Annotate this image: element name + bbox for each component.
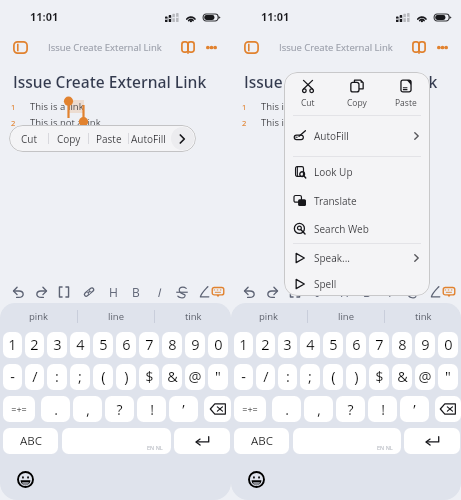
- button[interactable]: 6: [346, 332, 366, 358]
- button[interactable]: -: [3, 364, 22, 390]
- button[interactable]: ;: [70, 364, 90, 390]
- button[interactable]: ): [346, 364, 366, 390]
- button[interactable]: More actions: [168, 125, 196, 152]
- button[interactable]: 7: [139, 332, 159, 358]
- button[interactable]: -: [234, 364, 253, 390]
- button[interactable]: =+=: [3, 396, 35, 422]
- button[interactable]: Cut: [284, 72, 332, 115]
- button[interactable]: 1: [3, 332, 22, 358]
- button[interactable]: line: [308, 303, 384, 329]
- button[interactable]: @: [185, 364, 205, 390]
- button[interactable]: Enter: [404, 428, 460, 454]
- button[interactable]: AutoFill: [129, 125, 168, 152]
- button[interactable]: line: [78, 303, 154, 329]
- button[interactable]: Speak...: [284, 244, 430, 271]
- button[interactable]: Italic: [148, 281, 170, 303]
- button[interactable]: Enter: [174, 428, 230, 454]
- button[interactable]: =+=: [234, 396, 266, 422]
- button[interactable]: Toggle sidebar: [237, 34, 265, 60]
- button[interactable]: Backspace: [204, 396, 231, 422]
- button[interactable]: Translate: [284, 186, 430, 215]
- button[interactable]: ": [208, 364, 228, 390]
- button[interactable]: Hide keyboard: [207, 281, 229, 303]
- button[interactable]: ABC: [234, 428, 289, 454]
- button[interactable]: ): [116, 364, 136, 390]
- button[interactable]: 5: [323, 332, 343, 358]
- button[interactable]: 0: [208, 332, 228, 358]
- button[interactable]: Reading mode: [176, 35, 200, 59]
- button[interactable]: Bold: [125, 281, 147, 303]
- button[interactable]: ’: [169, 396, 198, 422]
- button[interactable]: ,: [73, 396, 102, 422]
- button[interactable]: Heading: [333, 281, 355, 303]
- button[interactable]: 0: [438, 332, 458, 358]
- button[interactable]: Insert link: [309, 281, 331, 303]
- button[interactable]: ?: [336, 396, 365, 422]
- button[interactable]: Cut: [9, 125, 48, 152]
- button[interactable]: (: [323, 364, 343, 390]
- button[interactable]: Highlight: [193, 281, 215, 303]
- button[interactable]: Highlight: [424, 281, 446, 303]
- button[interactable]: Look Up: [284, 157, 430, 186]
- button[interactable]: Paste: [89, 125, 128, 152]
- button[interactable]: 1: [234, 332, 253, 358]
- button[interactable]: @: [415, 364, 435, 390]
- button[interactable]: tink: [155, 303, 231, 329]
- button[interactable]: Heading: [102, 281, 124, 303]
- button[interactable]: 8: [162, 332, 182, 358]
- button[interactable]: More options: [430, 35, 454, 59]
- button[interactable]: 5: [93, 332, 113, 358]
- button[interactable]: 9: [415, 332, 435, 358]
- button[interactable]: 4: [70, 332, 90, 358]
- button[interactable]: Bold: [356, 281, 378, 303]
- button[interactable]: Backspace: [435, 396, 461, 422]
- button[interactable]: .: [41, 396, 70, 422]
- button[interactable]: Copy: [49, 125, 88, 152]
- button[interactable]: !: [137, 396, 166, 422]
- button[interactable]: Toggle sidebar: [6, 34, 34, 60]
- button[interactable]: ?: [105, 396, 134, 422]
- button[interactable]: Paste: [381, 72, 430, 115]
- button[interactable]: 9: [185, 332, 205, 358]
- button[interactable]: 4: [300, 332, 320, 358]
- button[interactable]: Italic: [379, 281, 401, 303]
- button[interactable]: pink: [0, 303, 77, 329]
- button[interactable]: (: [93, 364, 113, 390]
- button[interactable]: &: [162, 364, 182, 390]
- button[interactable]: $: [139, 364, 159, 390]
- button[interactable]: $: [369, 364, 389, 390]
- button[interactable]: Spell: [284, 271, 430, 296]
- button[interactable]: Search Web: [284, 215, 430, 243]
- button[interactable]: 2: [25, 332, 44, 358]
- button[interactable]: Insert link: [78, 281, 100, 303]
- button[interactable]: /: [256, 364, 275, 390]
- button[interactable]: 3: [47, 332, 67, 358]
- button[interactable]: Code block: [284, 281, 306, 303]
- button[interactable]: More options: [199, 35, 223, 59]
- button[interactable]: pink: [231, 303, 307, 329]
- button[interactable]: &: [392, 364, 412, 390]
- button[interactable]: !: [368, 396, 397, 422]
- button[interactable]: Emoji keyboard: [244, 467, 268, 491]
- button[interactable]: 3: [278, 332, 297, 358]
- button[interactable]: ABC: [3, 428, 58, 454]
- button[interactable]: 8: [392, 332, 412, 358]
- button[interactable]: Hide keyboard: [438, 281, 460, 303]
- button[interactable]: Redo: [261, 281, 283, 303]
- button[interactable]: tink: [385, 303, 461, 329]
- button[interactable]: ,: [304, 396, 333, 422]
- button[interactable]: :: [278, 364, 297, 390]
- button[interactable]: ": [438, 364, 458, 390]
- button[interactable]: Undo: [239, 281, 261, 303]
- button[interactable]: Reading mode: [407, 35, 431, 59]
- button[interactable]: Strikethrough: [171, 281, 193, 303]
- button[interactable]: ’: [400, 396, 429, 422]
- button[interactable]: AutoFill: [284, 116, 430, 156]
- button[interactable]: 6: [116, 332, 136, 358]
- button[interactable]: Code block: [53, 281, 75, 303]
- button[interactable]: 2: [256, 332, 275, 358]
- button[interactable]: /: [25, 364, 44, 390]
- button[interactable]: ;: [300, 364, 320, 390]
- button[interactable]: Space: [62, 428, 171, 454]
- button[interactable]: Strikethrough: [402, 281, 424, 303]
